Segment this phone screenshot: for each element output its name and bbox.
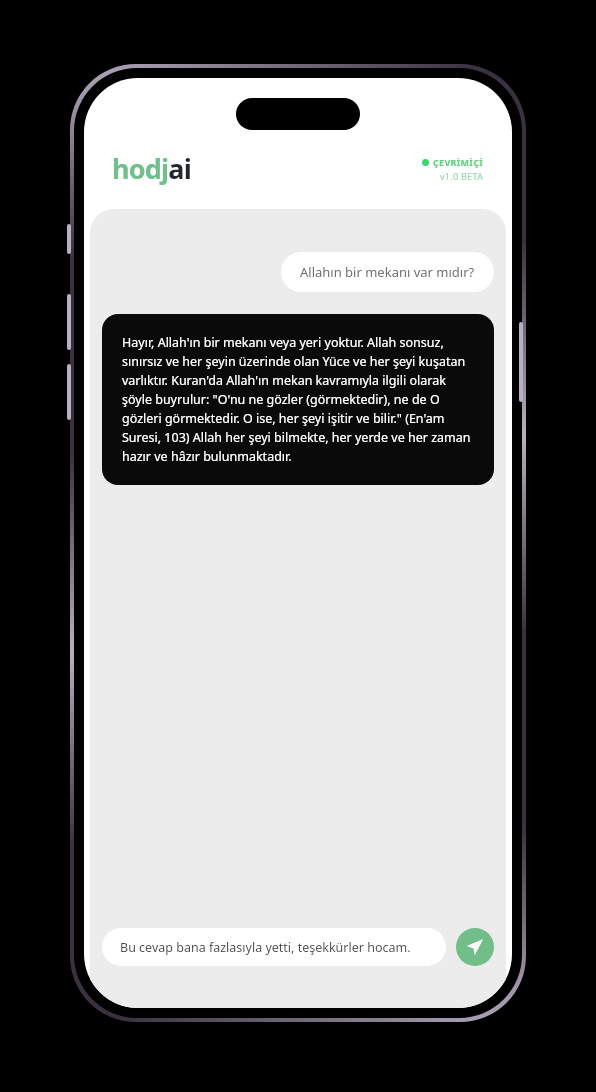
staticText: Allahın bir mekanı var mıdır? <box>300 263 475 281</box>
button[interactable]: Hayır, Allah'ın bir mekanı veya yeri yok… <box>102 314 494 485</box>
button[interactable]: Send message <box>456 928 494 966</box>
button[interactable]: hodjai <box>112 150 191 187</box>
button[interactable]: Allahın bir mekanı var mıdır? <box>281 252 494 292</box>
staticText: Hayır, Allah'ın bir mekanı veya yeri yok… <box>122 334 474 465</box>
staticText: v1.0 BETA <box>440 170 484 182</box>
staticText: ÇEVRİMİÇİ <box>433 156 484 168</box>
staticText: Bu cevap bana fazlasıyla yetti, teşekkür… <box>120 939 411 956</box>
button[interactable]: Bu cevap bana fazlasıyla yetti, teşekkür… <box>102 928 446 966</box>
